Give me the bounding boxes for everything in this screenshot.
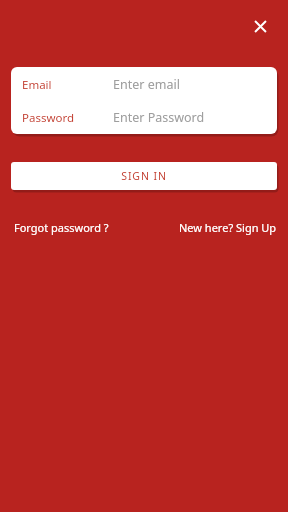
staticText: Enter email	[113, 76, 180, 93]
staticText: New here? Sign Up	[179, 220, 277, 235]
staticText: Forgot password ?	[14, 220, 109, 235]
staticText: Email	[22, 77, 52, 93]
staticText: Enter Password	[113, 109, 205, 126]
button[interactable]: Password	[11, 101, 277, 134]
button[interactable]: Forgot password ?	[14, 218, 109, 237]
button[interactable]: Close	[247, 13, 273, 39]
button[interactable]: Email	[11, 68, 277, 101]
button[interactable]: New here? Sign Up	[179, 218, 277, 237]
button[interactable]: SIGN IN	[11, 162, 277, 190]
staticText: Password	[22, 110, 75, 126]
staticText: SIGN IN	[121, 169, 167, 183]
